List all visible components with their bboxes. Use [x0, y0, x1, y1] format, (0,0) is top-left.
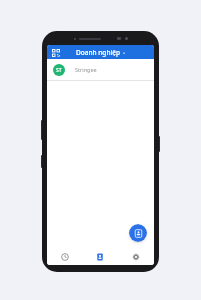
- button[interactable]: Recent calls: [47, 248, 82, 265]
- button[interactable]: Doanh nghiệp: [76, 48, 126, 57]
- staticText: Stringee: [75, 66, 97, 73]
- button[interactable]: Scan QR code: [50, 47, 61, 58]
- button[interactable]: Contacts: [82, 248, 118, 265]
- staticText: ST: [56, 67, 62, 74]
- staticText: Doanh nghiệp: [76, 48, 120, 57]
- button[interactable]: Add contact: [129, 224, 147, 242]
- button[interactable]: ST: [47, 59, 154, 80]
- button[interactable]: Settings: [118, 248, 154, 265]
